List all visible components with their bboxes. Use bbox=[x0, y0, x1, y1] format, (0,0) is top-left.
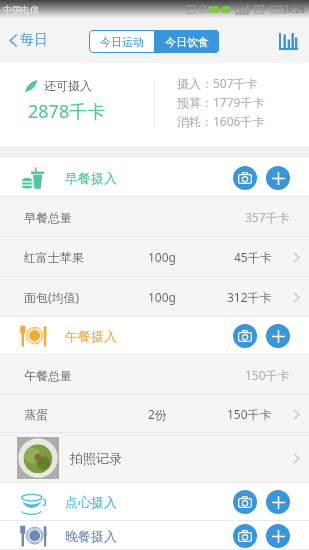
staticText: 蒸蛋 bbox=[24, 407, 48, 422]
button[interactable]: 蒸蛋 bbox=[0, 395, 309, 433]
staticText: 今日运动 bbox=[100, 35, 144, 49]
staticText: 100g bbox=[148, 289, 176, 305]
staticText: 19:28 bbox=[282, 3, 306, 15]
staticText: 拍照记录 bbox=[70, 450, 122, 466]
staticText: 还可摄入 bbox=[44, 78, 92, 93]
button[interactable]: Add food bbox=[266, 524, 290, 548]
button[interactable]: Add food bbox=[266, 166, 290, 190]
button[interactable]: 红富士苹果 bbox=[0, 237, 309, 277]
staticText: 中国电信 bbox=[3, 4, 39, 15]
button[interactable]: 每日 bbox=[0, 27, 57, 53]
staticText: 早餐摄入 bbox=[65, 170, 117, 186]
staticText: 午餐总量 bbox=[24, 368, 72, 383]
staticText: 150千卡 bbox=[245, 367, 290, 383]
staticText: 2份 bbox=[148, 406, 167, 422]
staticText: 红富士苹果 bbox=[24, 250, 84, 265]
staticText: 晚餐摄入 bbox=[65, 528, 117, 544]
button[interactable]: 面包(均值) bbox=[0, 277, 309, 317]
staticText: 2878千卡 bbox=[28, 99, 106, 124]
staticText: 摄入：507千卡 bbox=[177, 75, 258, 91]
staticText: 150千卡 bbox=[227, 406, 272, 422]
staticText: 午餐摄入 bbox=[65, 328, 117, 344]
button[interactable]: 今日运动 bbox=[89, 30, 154, 53]
staticText: 早餐总量 bbox=[24, 210, 72, 225]
staticText: 消耗：1606千卡 bbox=[177, 113, 265, 129]
staticText: 点心摄入 bbox=[65, 494, 117, 510]
button[interactable]: Add food bbox=[266, 490, 290, 514]
staticText: 面包(均值) bbox=[24, 289, 80, 305]
button[interactable]: Take photo bbox=[233, 490, 257, 514]
staticText: 357千卡 bbox=[245, 209, 290, 225]
staticText: 每日 bbox=[20, 31, 48, 49]
button[interactable]: 早餐总量 bbox=[0, 197, 309, 237]
button[interactable]: 拍照记录 bbox=[0, 433, 309, 483]
button[interactable]: Take photo bbox=[233, 524, 257, 548]
staticText: 预算：1779千卡 bbox=[177, 94, 265, 110]
staticText: 45千卡 bbox=[234, 249, 272, 265]
button[interactable]: Take photo bbox=[233, 324, 257, 348]
staticText: 312千卡 bbox=[227, 289, 272, 305]
staticText: 今日饮食 bbox=[165, 35, 209, 49]
button[interactable]: 今日饮食 bbox=[154, 30, 219, 53]
button[interactable]: Add food bbox=[266, 324, 290, 348]
button[interactable]: Statistics bbox=[268, 22, 309, 60]
button[interactable]: Take photo bbox=[233, 166, 257, 190]
staticText: 100g bbox=[148, 249, 176, 265]
button[interactable]: 午餐总量 bbox=[0, 355, 309, 395]
